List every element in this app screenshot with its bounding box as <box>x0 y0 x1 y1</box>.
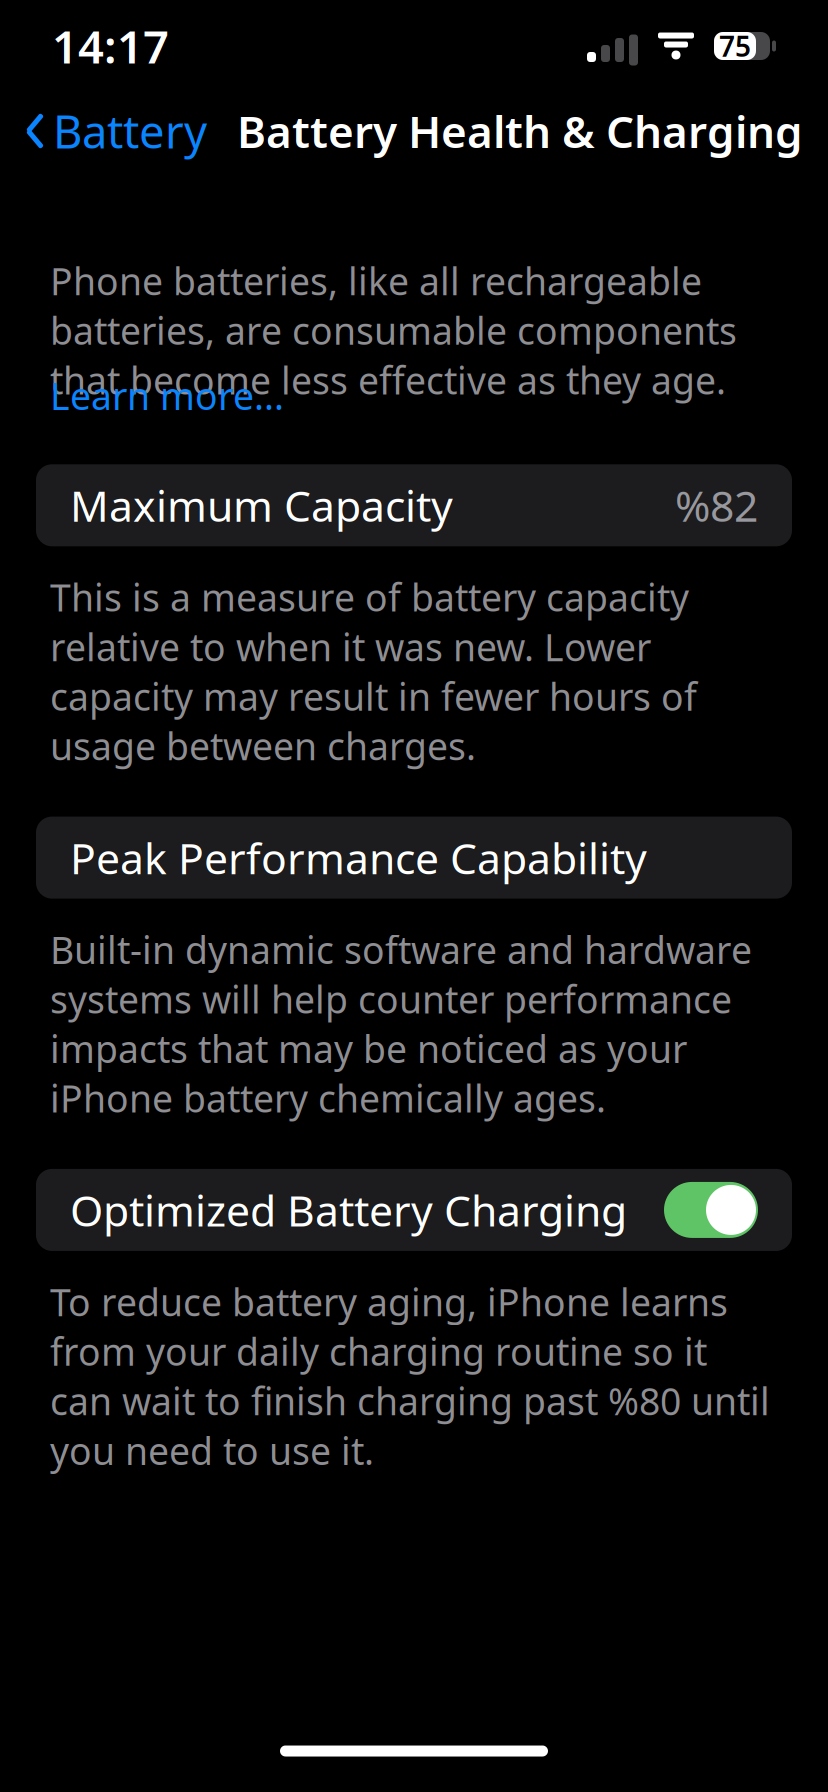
staticText: This is a measure of battery capacity re… <box>50 572 697 771</box>
staticText: Phone batteries, like all rechargeable b… <box>50 256 737 405</box>
staticText: Learn more... <box>50 371 284 420</box>
staticText: Peak Performance Capability <box>70 829 647 886</box>
staticText: %82 <box>675 477 758 534</box>
button[interactable]: Maximum Capacity <box>36 464 792 546</box>
button[interactable]: Battery <box>0 91 207 171</box>
staticText: Battery Health & Charging <box>237 102 803 160</box>
staticText: To reduce battery aging, iPhone learns f… <box>50 1277 770 1475</box>
staticText: 75 <box>719 27 751 65</box>
button[interactable]: Optimized Battery Charging <box>36 1169 792 1251</box>
staticText: Battery <box>53 101 207 161</box>
staticText: Optimized Battery Charging <box>70 1182 627 1238</box>
button[interactable]: Learn more... <box>50 371 284 420</box>
staticText: Maximum Capacity <box>70 477 453 534</box>
staticText: Built-in dynamic software and hardware s… <box>50 925 752 1123</box>
button[interactable]: Peak Performance Capability <box>36 817 792 899</box>
staticText: 14:17 <box>52 16 169 76</box>
